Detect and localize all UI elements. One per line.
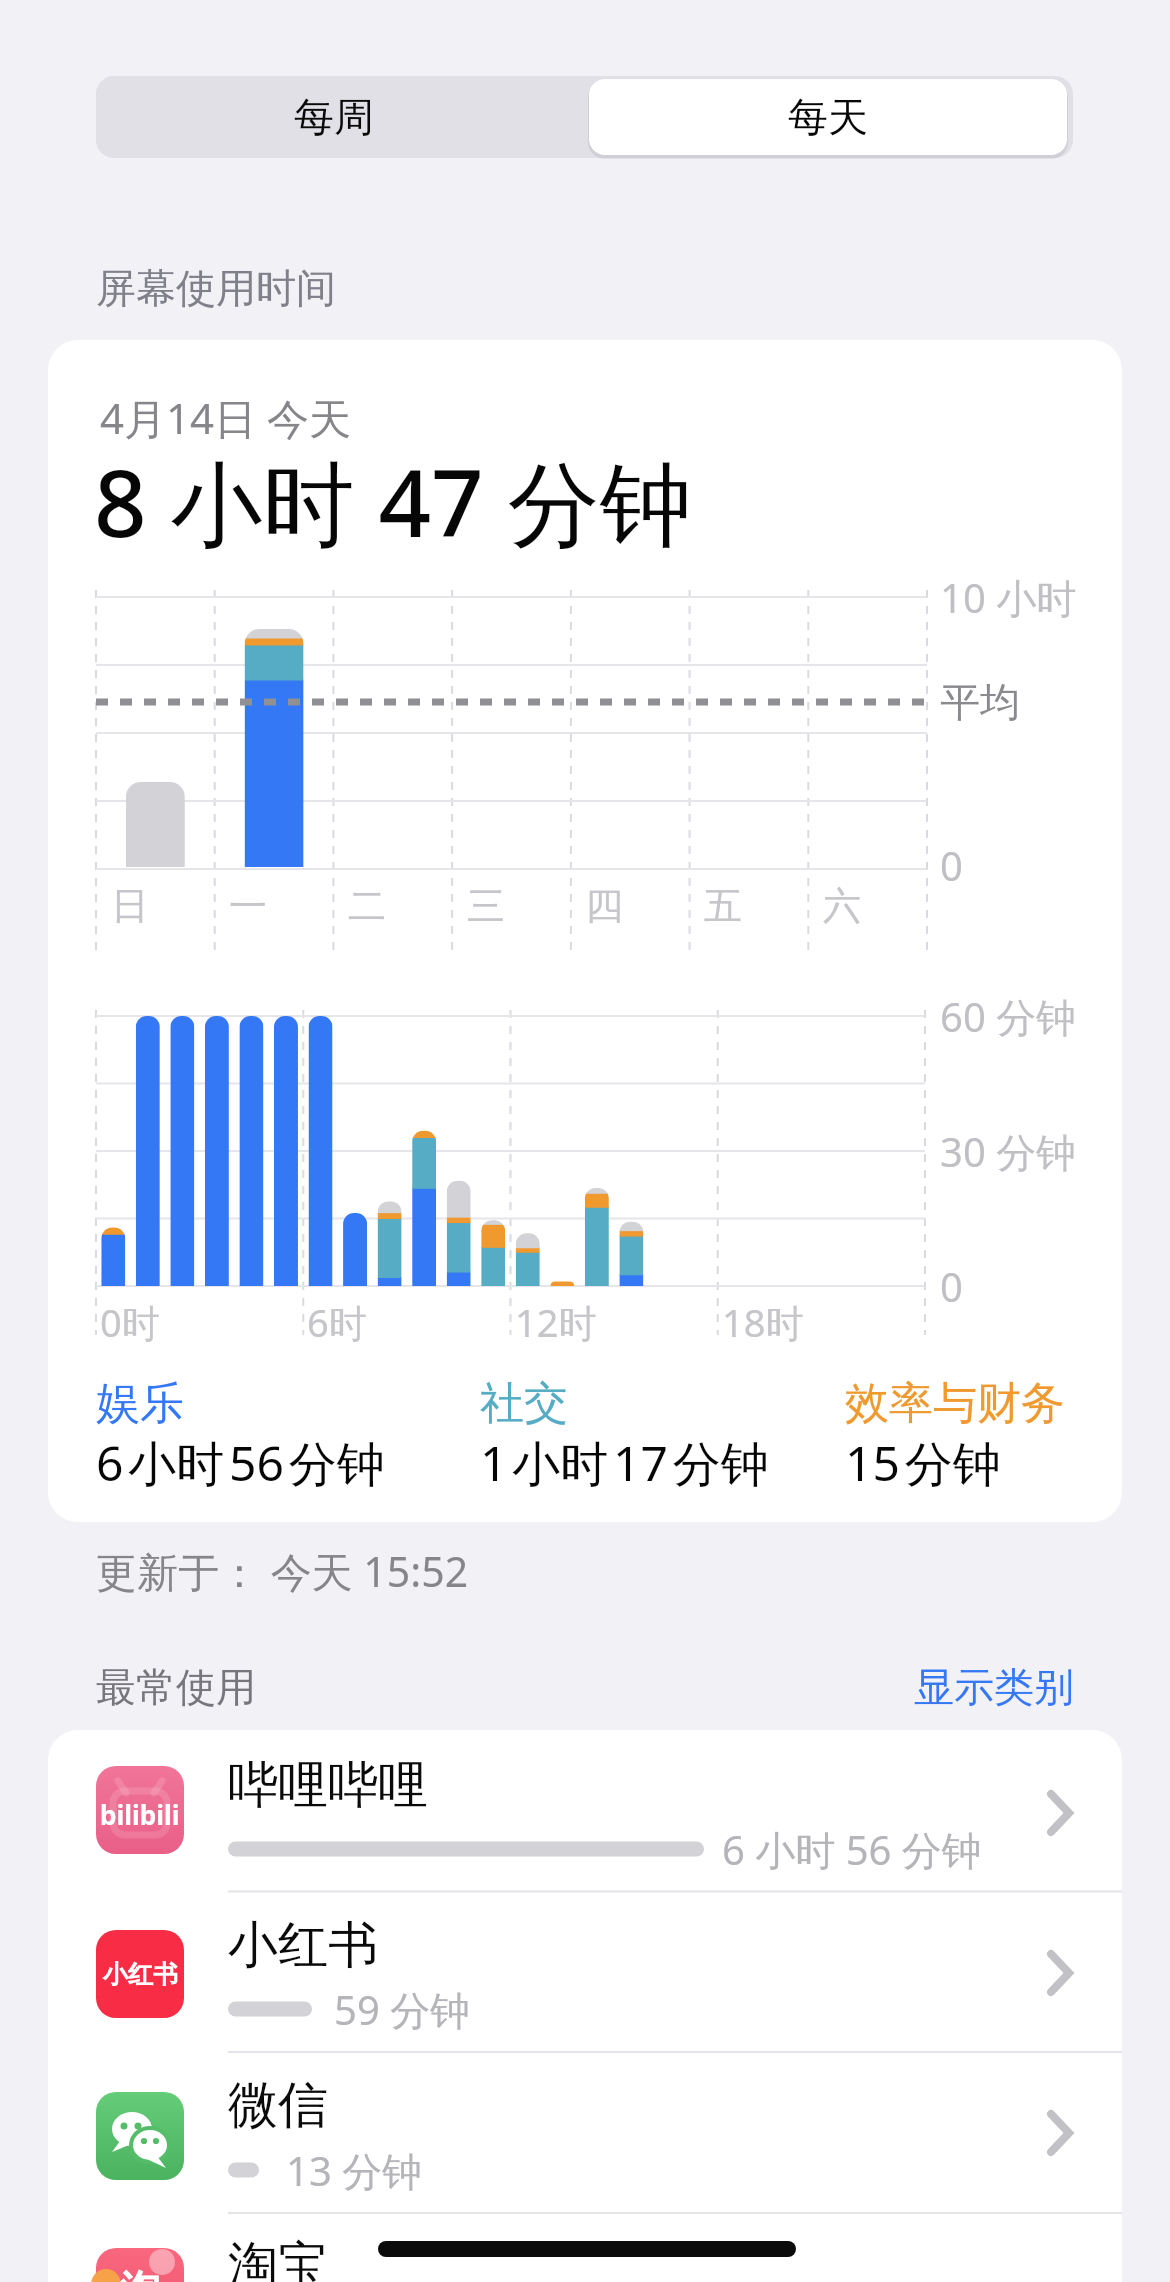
staticText: 10 小时 (940, 570, 1077, 625)
button[interactable]: 显示类别 (374, 1653, 1074, 1721)
staticText: 4月14日 今天 (100, 389, 351, 446)
staticText: 每天 (788, 92, 868, 142)
staticText: 哔哩哔哩 (228, 1754, 428, 1817)
staticText: 30 分钟 (940, 1124, 1077, 1179)
button[interactable] (48, 1892, 1122, 2052)
staticText: 更新于： 今天 15:52 (96, 1543, 469, 1599)
staticText: 小红书 (228, 1914, 378, 1977)
staticText: 8 小时 47 分钟 (94, 439, 692, 559)
staticText: 娱乐 (96, 1376, 184, 1431)
staticText: 最常使用 (96, 1662, 256, 1712)
staticText: 小红书 (103, 1959, 178, 1990)
staticText: 0 (940, 838, 963, 892)
staticText: 六 (823, 882, 861, 930)
staticText: 59 分钟 (334, 1982, 471, 2037)
staticText: 二 (348, 882, 386, 930)
button[interactable] (589, 79, 1067, 155)
staticText: 6 小时 56 分钟 (96, 1430, 385, 1496)
staticText: 0时 (100, 1296, 160, 1348)
staticText: 社交 (480, 1376, 568, 1431)
button[interactable] (48, 2052, 1122, 2213)
button[interactable] (48, 2213, 1122, 2282)
staticText: 12时 (515, 1296, 597, 1348)
staticText: bilibili (100, 1797, 180, 1832)
staticText: 日 (111, 882, 149, 930)
staticText: 13 分钟 (286, 2143, 423, 2198)
staticText: 1 小时 17 分钟 (480, 1430, 769, 1496)
staticText: 0 (940, 1259, 963, 1313)
staticText: 五 (704, 882, 742, 930)
button[interactable] (48, 1735, 1122, 1892)
staticText: 平均 (940, 677, 1020, 727)
staticText: 屏幕使用时间 (96, 263, 336, 313)
staticText: 淘宝 (228, 2234, 328, 2282)
staticText: 6时 (307, 1296, 367, 1348)
staticText: 淘 (120, 2265, 160, 2282)
staticText: 四 (585, 882, 623, 930)
staticText: 6 小时 56 分钟 (722, 1822, 982, 1877)
staticText: 15 分钟 (845, 1430, 1001, 1496)
staticText: 效率与财务 (845, 1376, 1065, 1431)
staticText: 微信 (228, 2074, 328, 2137)
staticText: 三 (467, 882, 505, 930)
button[interactable] (96, 76, 584, 158)
staticText: 显示类别 (914, 1662, 1074, 1712)
staticText: 每周 (294, 92, 374, 142)
staticText: 60 分钟 (940, 989, 1077, 1044)
staticText: 18时 (722, 1296, 804, 1348)
staticText: 一 (229, 882, 267, 930)
